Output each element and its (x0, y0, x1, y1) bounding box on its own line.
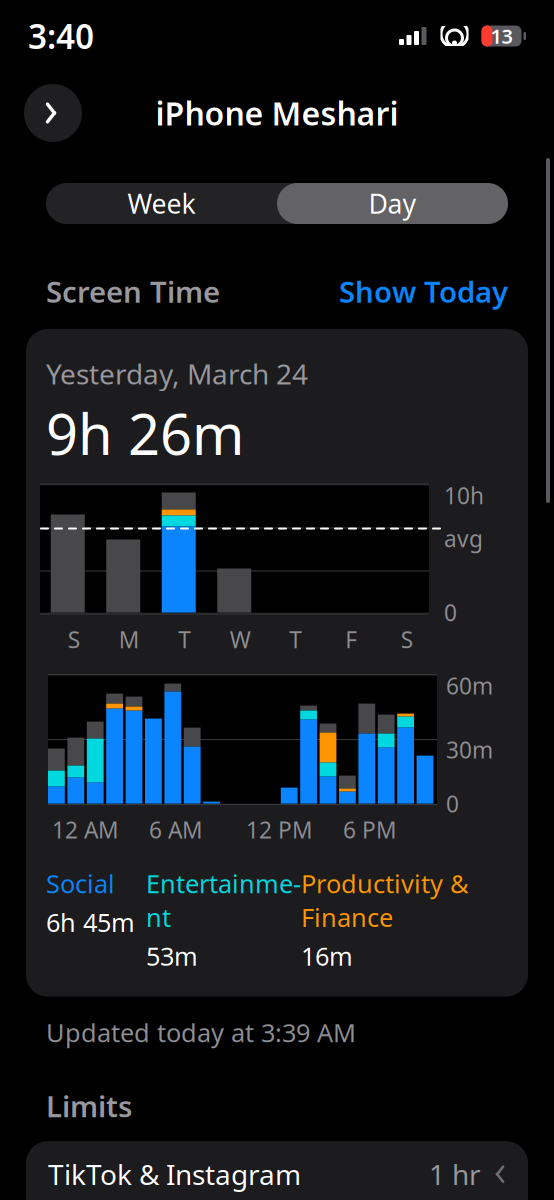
staticText: Screen Time (46, 272, 220, 311)
staticText: 10h (444, 480, 484, 511)
staticText: avg (444, 523, 483, 554)
button[interactable]: TikTok & Instagram (26, 1141, 528, 1200)
staticText: 6h 45m (46, 905, 135, 939)
staticText: 1 hr (429, 1156, 481, 1193)
staticText: 12 PM (246, 815, 313, 845)
staticText: S (68, 624, 80, 655)
staticText: Show Today (339, 272, 508, 311)
button[interactable]: Day (277, 183, 508, 224)
staticText: 3:40 (28, 14, 94, 58)
staticText: 53m (146, 939, 198, 973)
staticText: F (345, 624, 357, 655)
staticText: 16m (301, 939, 353, 973)
staticText: 0 (444, 597, 457, 628)
staticText: iPhone Meshari (155, 92, 398, 134)
staticText: TikTok & Instagram (48, 1156, 301, 1193)
staticText: 6 AM (149, 815, 203, 845)
staticText: Limits (46, 1086, 132, 1125)
staticText: 9h 26m (46, 396, 244, 470)
staticText: S (401, 624, 413, 655)
staticText: 12 AM (52, 815, 119, 845)
staticText: 30m (446, 735, 493, 765)
staticText: M (119, 624, 140, 655)
staticText: 0 (446, 789, 459, 819)
staticText: Entertainment (146, 867, 301, 934)
staticText: 60m (446, 671, 493, 701)
button[interactable]: Week (46, 183, 277, 224)
staticText: Productivity & Finance (301, 867, 469, 934)
staticText: Yesterday, March 24 (46, 355, 308, 392)
staticText: 13 (490, 23, 512, 49)
staticText: T (178, 624, 191, 655)
staticText: Updated today at 3:39 AM (46, 1016, 356, 1049)
staticText: 6 PM (343, 815, 397, 845)
staticText: Social (46, 867, 115, 900)
staticText: Day (368, 186, 416, 221)
staticText: Week (127, 186, 195, 221)
staticText: T (289, 624, 302, 655)
button[interactable]: Back (24, 84, 82, 142)
staticText: W (230, 624, 251, 655)
button[interactable]: Show Today (339, 272, 508, 311)
